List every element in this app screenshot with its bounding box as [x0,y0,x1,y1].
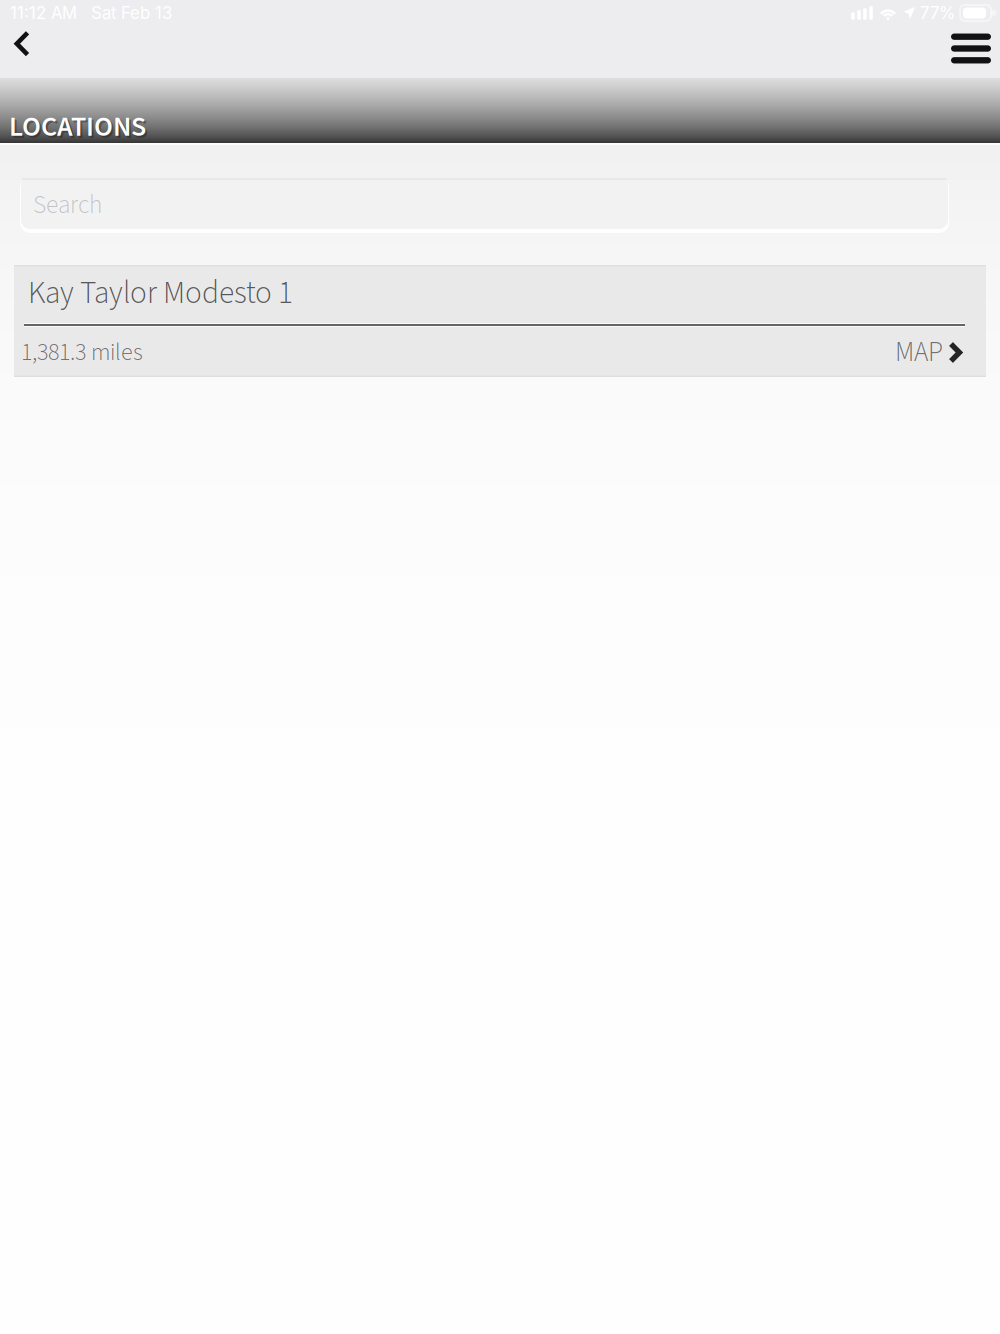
staticText: LOCATIONS [9,107,146,147]
staticText: 1,381.3 miles [21,335,143,370]
staticText: MAP [895,333,943,372]
staticText: LOCATIONS [11,109,148,149]
button[interactable]: Back [1,26,44,78]
button[interactable]: Kay Taylor Modesto 1 [14,265,986,377]
button[interactable]: Search [20,177,949,233]
staticText: 77% [920,3,955,23]
button[interactable]: Menu [942,26,1000,78]
staticText: Sat Feb 13 [91,3,172,23]
staticText: 11:12 AM [10,3,77,23]
staticText: Search [33,187,102,223]
staticText: Kay Taylor Modesto 1 [28,271,293,316]
